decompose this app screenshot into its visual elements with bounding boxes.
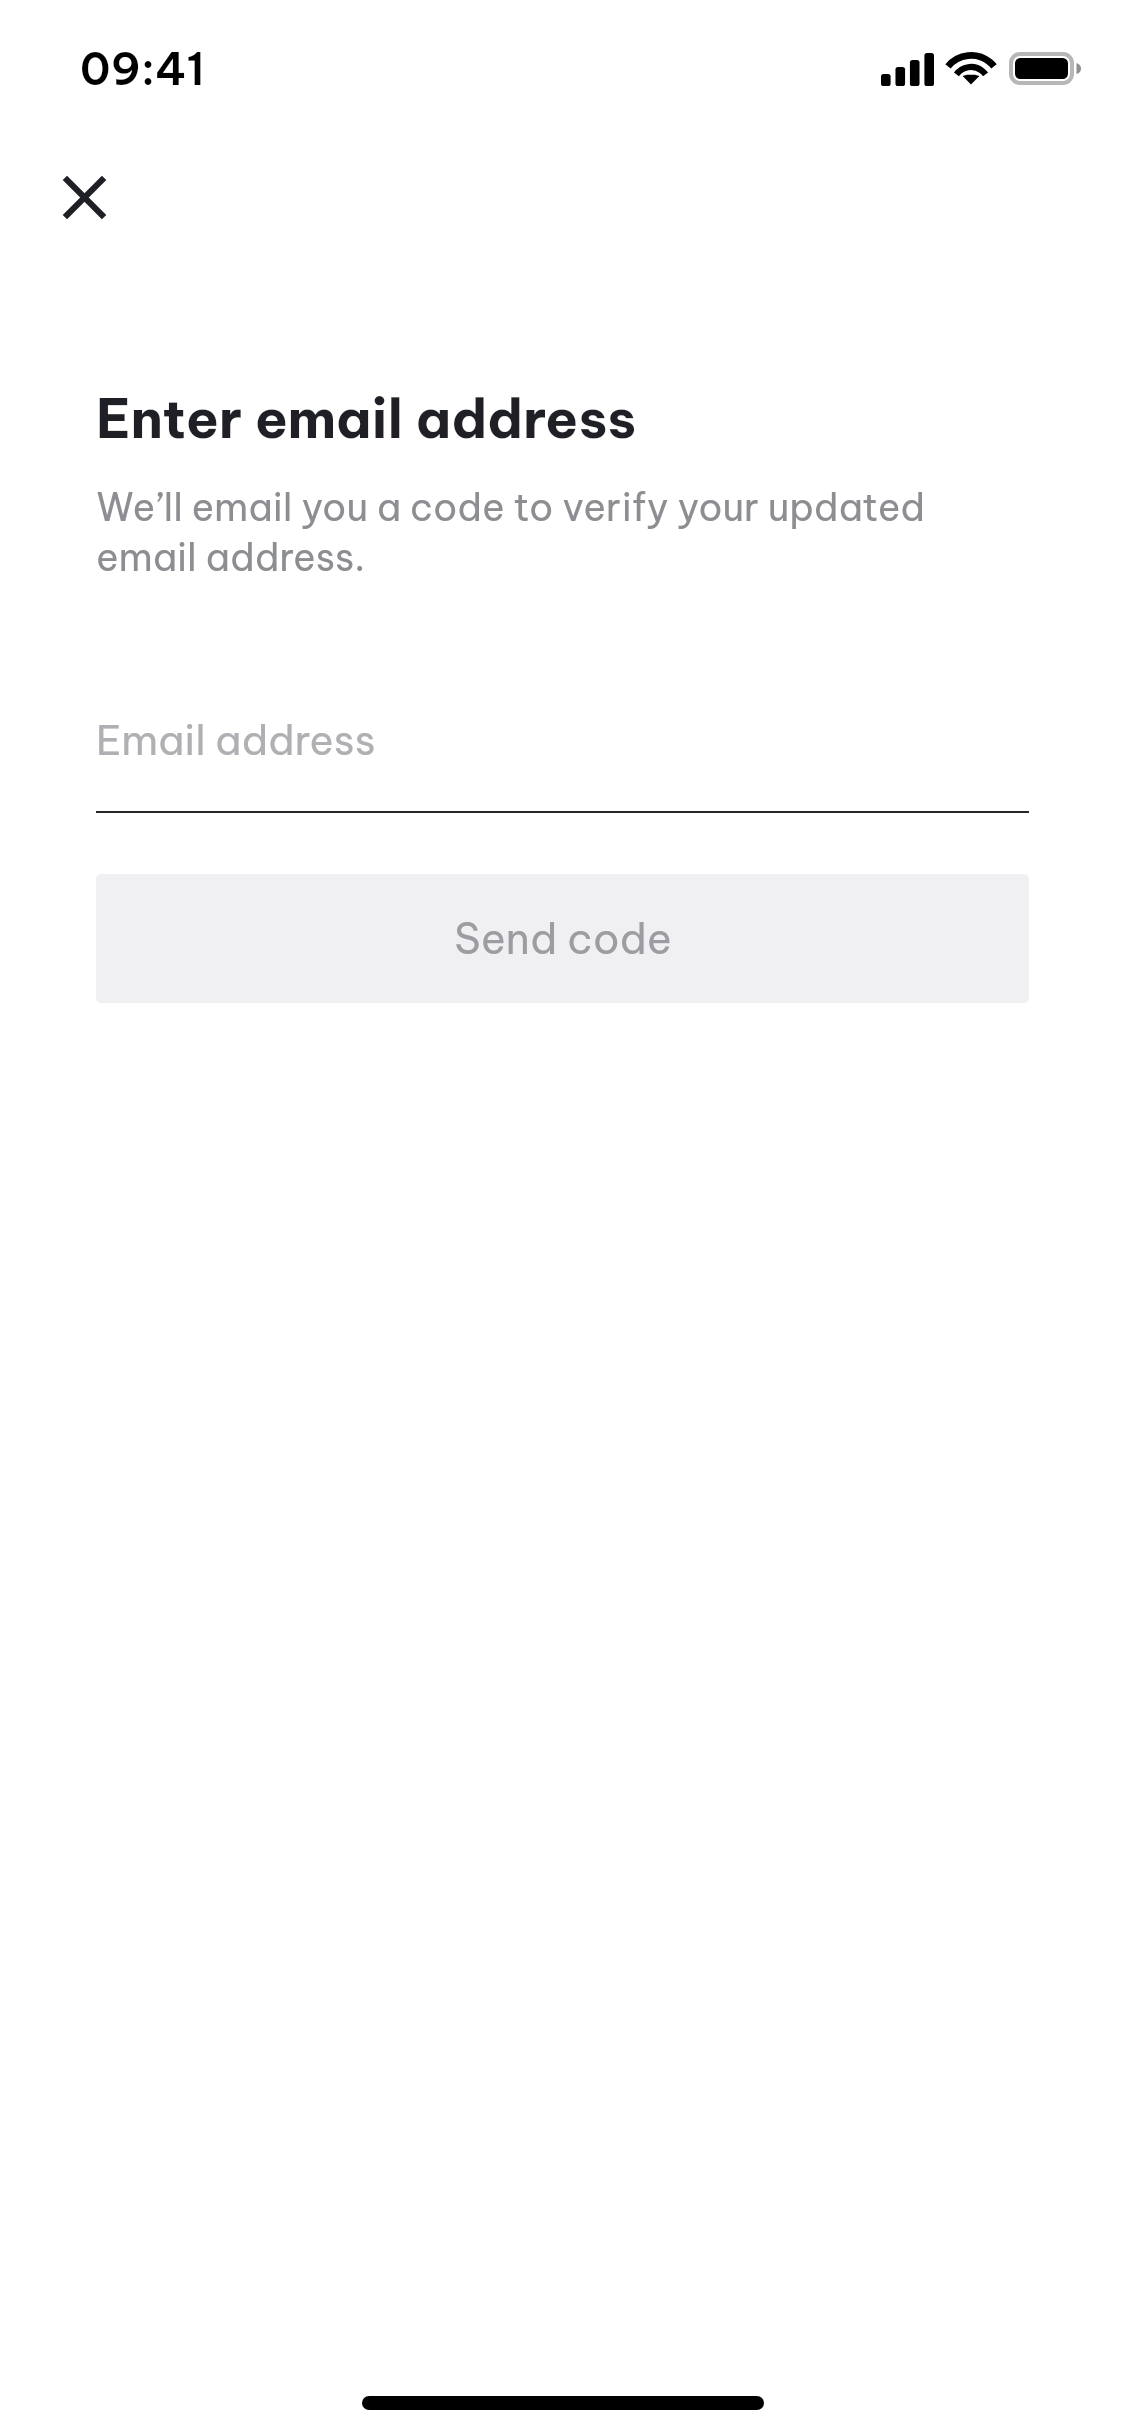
button[interactable]: Email address — [96, 714, 1029, 813]
staticText: We’ll email you a code to verify your up… — [96, 483, 1029, 581]
staticText: Email address — [96, 714, 376, 766]
staticText: Send code — [454, 912, 672, 965]
button[interactable]: Close — [24, 137, 144, 257]
staticText: Enter email address — [96, 384, 637, 452]
button[interactable]: Send code — [96, 874, 1029, 1003]
staticText: 09:41 — [80, 41, 205, 97]
